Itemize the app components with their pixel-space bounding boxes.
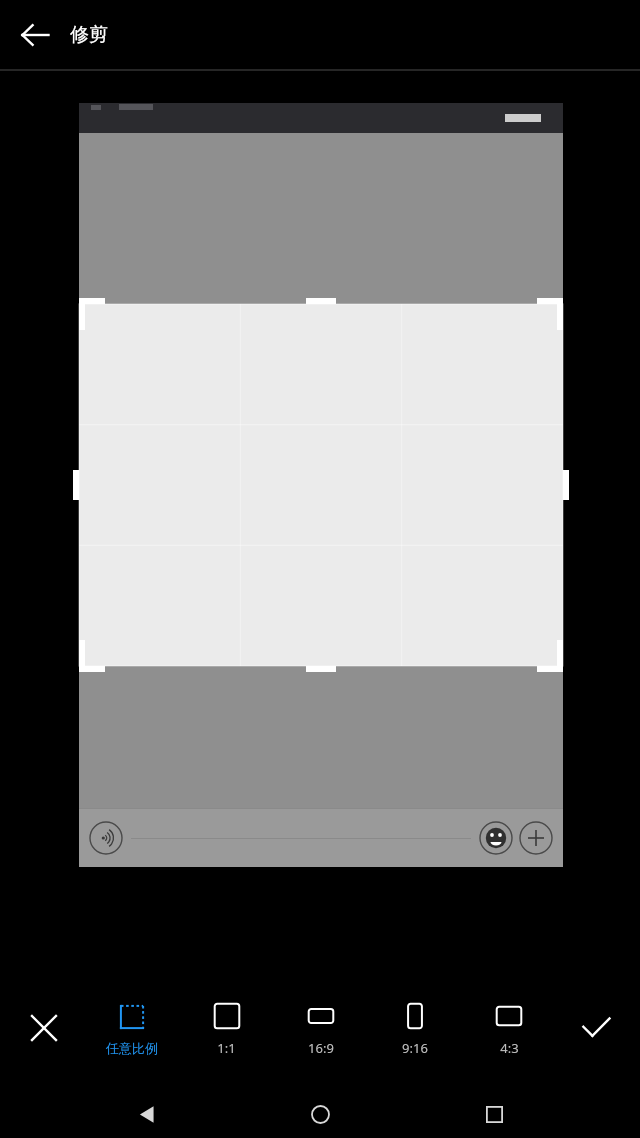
button[interactable]: Back: [120, 1090, 174, 1138]
button[interactable]: Cancel: [14, 998, 74, 1058]
staticText: 任意比例: [106, 1040, 158, 1056]
button[interactable]: 9:16: [368, 965, 462, 1090]
button[interactable]: 4:3: [462, 965, 556, 1090]
button[interactable]: Done: [566, 998, 626, 1058]
button[interactable]: 任意比例: [84, 965, 179, 1090]
staticText: 4:3: [500, 1039, 519, 1057]
button[interactable]: Recents: [467, 1090, 521, 1138]
staticText: 1:1: [217, 1039, 236, 1057]
staticText: 16:9: [308, 1039, 334, 1057]
staticText: 9:16: [402, 1039, 428, 1057]
staticText: 修剪: [70, 23, 108, 47]
button[interactable]: Home: [293, 1090, 347, 1138]
button[interactable]: 1:1: [179, 965, 274, 1090]
button[interactable]: Back: [0, 0, 70, 69]
button[interactable]: 16:9: [274, 965, 368, 1090]
